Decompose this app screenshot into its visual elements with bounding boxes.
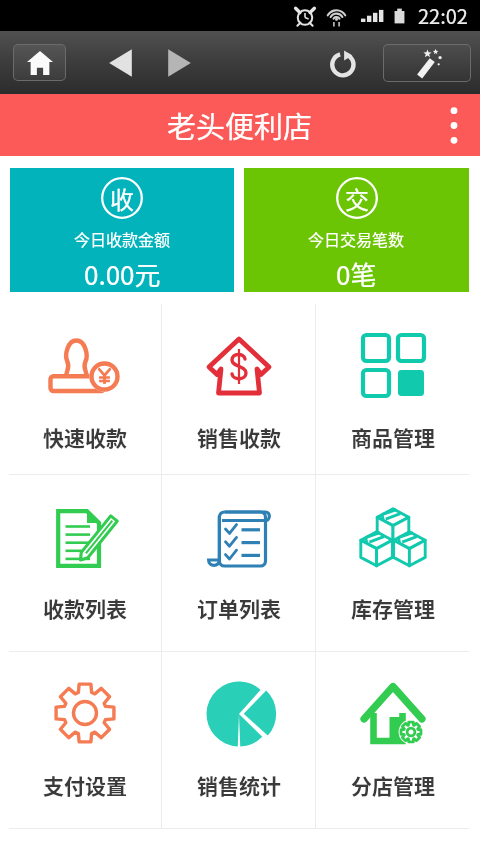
staticText: 支付设置 bbox=[43, 770, 127, 800]
button[interactable]: Home bbox=[14, 45, 65, 80]
staticText: 商品管理 bbox=[351, 422, 435, 452]
staticText: 收 bbox=[110, 181, 134, 216]
button[interactable]: 分店管理 bbox=[316, 652, 469, 828]
staticText: 销售统计 bbox=[197, 770, 281, 800]
button[interactable]: Reload bbox=[320, 39, 368, 87]
button[interactable]: 交 bbox=[244, 168, 469, 292]
button[interactable]: Magic bbox=[384, 45, 470, 81]
staticText: 订单列表 bbox=[197, 593, 281, 623]
button[interactable]: 销售收款 bbox=[162, 304, 315, 474]
button[interactable]: 支付设置 bbox=[9, 652, 161, 828]
staticText: 老头便利店 bbox=[167, 104, 313, 146]
staticText: 今日交易笔数 bbox=[308, 227, 405, 250]
staticText: 分店管理 bbox=[351, 770, 435, 800]
button[interactable]: More options bbox=[428, 94, 480, 156]
button[interactable]: Back bbox=[96, 39, 144, 87]
button[interactable]: Forward bbox=[155, 39, 203, 87]
staticText: 0笔 bbox=[336, 255, 377, 291]
button[interactable]: 收款列表 bbox=[9, 475, 161, 651]
staticText: 0.00元 bbox=[84, 255, 161, 291]
button[interactable]: 订单列表 bbox=[162, 475, 315, 651]
button[interactable]: 销售统计 bbox=[162, 652, 315, 828]
button[interactable]: 收 bbox=[10, 168, 234, 292]
button[interactable]: 商品管理 bbox=[316, 304, 469, 474]
staticText: 今日收款金额 bbox=[74, 227, 171, 250]
staticText: 22:02 bbox=[418, 1, 468, 30]
staticText: 销售收款 bbox=[197, 422, 281, 452]
staticText: 快速收款 bbox=[43, 422, 127, 452]
staticText: 库存管理 bbox=[351, 593, 435, 623]
button[interactable]: 库存管理 bbox=[316, 475, 469, 651]
staticText: 收款列表 bbox=[43, 593, 127, 623]
button[interactable]: 快速收款 bbox=[9, 304, 161, 474]
staticText: 交 bbox=[345, 181, 369, 216]
